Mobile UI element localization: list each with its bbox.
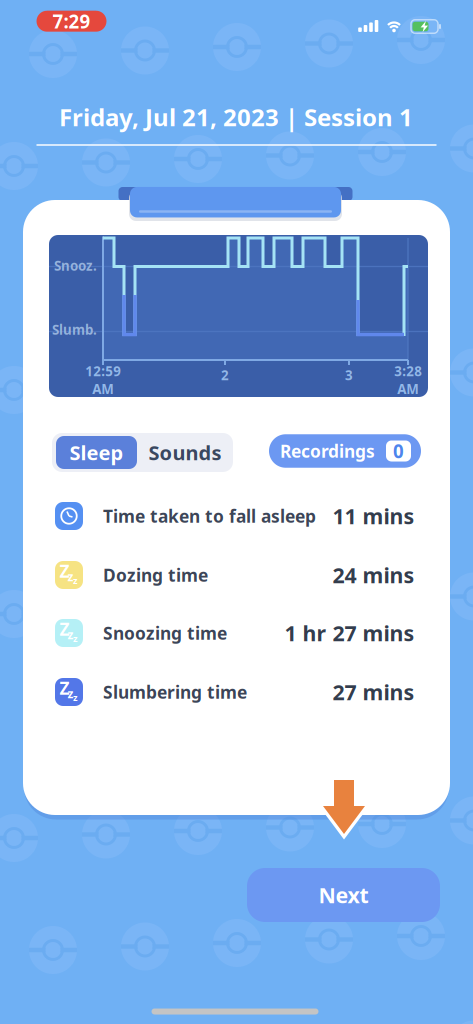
staticText: Snoozing time — [103, 621, 227, 644]
staticText: Slumb. — [52, 321, 97, 338]
staticText: z — [67, 568, 73, 584]
button[interactable]: Next — [247, 868, 440, 922]
staticText: Dozing time — [103, 563, 208, 586]
staticText: 11 mins — [332, 502, 414, 530]
staticText: 2 — [221, 366, 229, 384]
staticText: 3:28 AM — [394, 362, 422, 398]
staticText: Time taken to fall asleep — [103, 504, 316, 527]
staticText: Recordings — [280, 439, 375, 462]
button[interactable]: Recordings — [269, 434, 421, 468]
button[interactable]: Sleep — [56, 436, 137, 469]
staticText: Snooz. — [54, 257, 97, 274]
staticText: 1 hr 27 mins — [284, 619, 414, 647]
staticText: Slumbering time — [103, 680, 247, 703]
staticText: Z — [59, 676, 69, 699]
staticText: z — [73, 632, 78, 645]
staticText: Friday, Jul 21, 2023 | Session 1 — [59, 101, 413, 133]
staticText: z — [73, 574, 78, 587]
staticText: Next — [318, 881, 368, 909]
staticText: z — [73, 691, 78, 704]
staticText: 7:29 — [52, 9, 90, 34]
staticText: 3 — [345, 366, 353, 384]
staticText: 27 mins — [332, 678, 414, 706]
staticText: z — [67, 626, 73, 642]
staticText: Sleep — [69, 439, 123, 466]
staticText: 12:59 AM — [85, 362, 121, 398]
staticText: z — [67, 685, 73, 701]
button[interactable]: Sounds — [140, 436, 230, 469]
staticText: 24 mins — [332, 561, 414, 589]
staticText: 0 — [393, 439, 404, 463]
staticText: Z — [59, 559, 69, 582]
staticText: Z — [59, 617, 69, 640]
staticText: Sounds — [148, 439, 221, 466]
